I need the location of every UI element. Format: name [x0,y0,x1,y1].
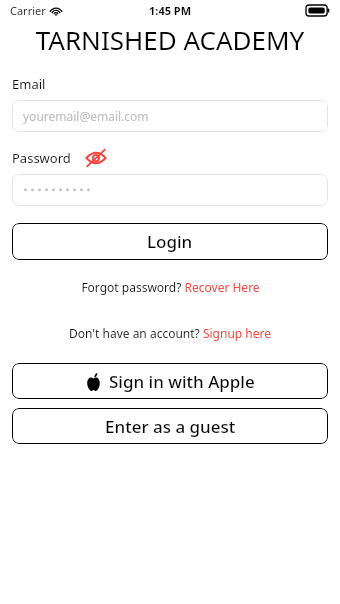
button[interactable]: Forgot password? Recover Here [12,279,328,295]
staticText: Carrier [10,3,46,18]
staticText: Forgot password? Recover Here [81,279,260,295]
staticText: Sign in with Apple [109,370,255,393]
button[interactable] [12,174,328,206]
staticText: Password [12,149,71,167]
staticText: Login [147,230,193,253]
button[interactable]: Toggle password visibility [83,148,109,168]
button[interactable]: Login [12,223,328,260]
button[interactable]: youremail@email.com [12,100,328,132]
staticText: Enter as a guest [105,415,236,438]
staticText: TARNISHED ACADEMY [0,22,340,57]
staticText: Don't have an account? Signup here [69,325,271,341]
button[interactable]: Enter as a guest [12,408,328,444]
staticText: youremail@email.com [23,108,149,124]
staticText: Email [12,75,46,93]
button[interactable]: Don't have an account? Signup here [12,325,328,341]
staticText: 1:45 PM [149,3,192,18]
button[interactable]: Sign in with Apple [12,363,328,399]
